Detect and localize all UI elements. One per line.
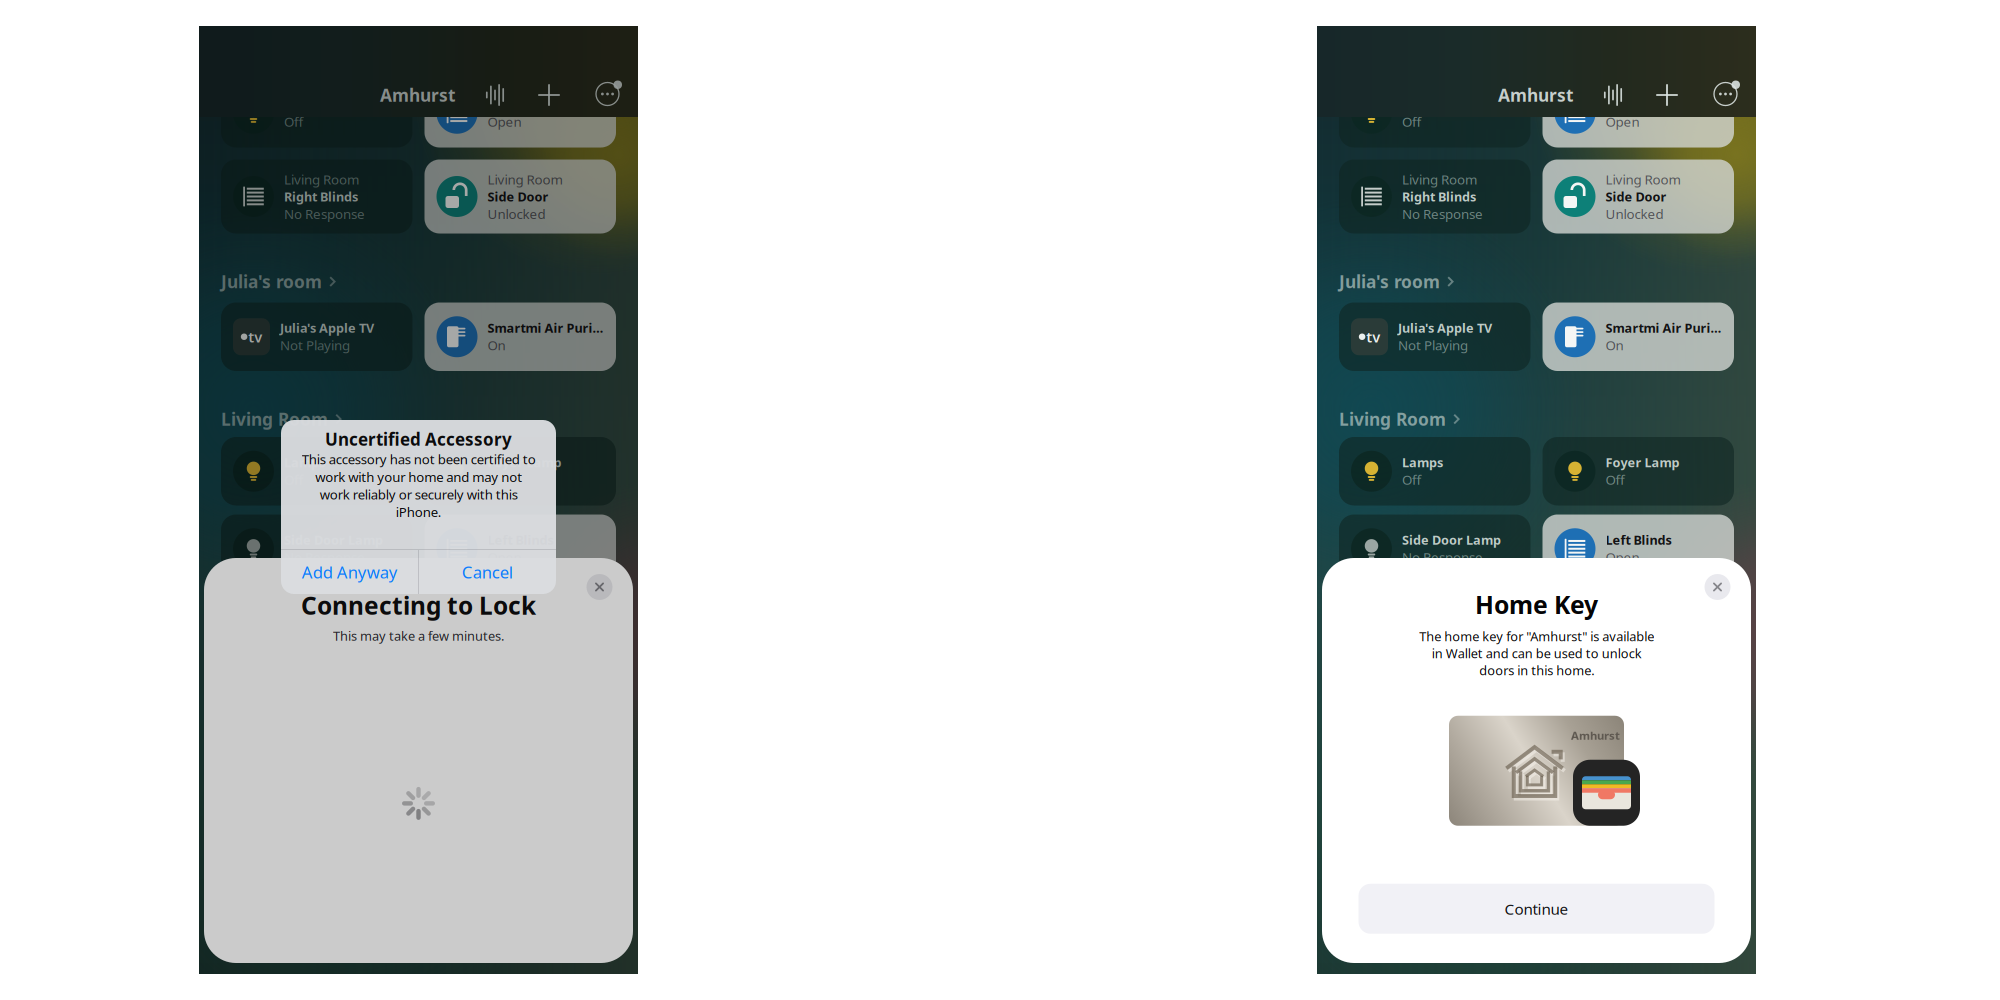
staticText: No Response	[1402, 205, 1483, 223]
staticText: Add Anyway	[302, 561, 398, 583]
staticText: Off	[284, 113, 303, 130]
button[interactable]: More options	[1710, 78, 1736, 112]
staticText: Smartmi Air Purifi...	[1605, 319, 1722, 336]
button[interactable]: Smartmi Air Purifi...	[424, 302, 616, 371]
button[interactable]: Continue	[1358, 884, 1714, 934]
button[interactable]: Side Door Lamp	[221, 514, 412, 583]
staticText: This accessory has not been certified to…	[301, 450, 535, 521]
staticText: The home key for "Amhurst" is available …	[1419, 628, 1654, 679]
staticText: tv	[1366, 327, 1380, 346]
button[interactable]: More options	[592, 78, 618, 112]
button[interactable]: tv	[1339, 302, 1530, 371]
button[interactable]: Living Room	[1339, 159, 1530, 233]
button[interactable]: Left Blinds	[424, 514, 616, 583]
button[interactable]: Lamps	[221, 437, 412, 505]
staticText: Side Door	[487, 188, 548, 205]
staticText: Foyer Lamp	[487, 454, 561, 471]
staticText: Open	[1605, 548, 1639, 566]
staticText: Open	[487, 548, 521, 566]
staticText: Right Blinds	[284, 188, 358, 205]
staticText: Living Room	[284, 170, 359, 188]
staticText: Unlocked	[487, 205, 545, 223]
staticText: tv	[248, 327, 262, 346]
staticText: Side Door	[1605, 188, 1666, 205]
staticText: Off	[1402, 113, 1421, 130]
staticText: On	[487, 336, 505, 354]
button[interactable]: Living Room	[1339, 409, 1733, 429]
staticText: Not Playing	[280, 336, 350, 354]
button[interactable]: Media	[480, 78, 510, 112]
button[interactable]: Lamp	[221, 79, 412, 147]
staticText: Amhurst	[1498, 83, 1574, 106]
button[interactable]: Right Blinds	[1542, 79, 1734, 147]
staticText: Julia's room	[1339, 270, 1440, 293]
staticText: Open	[1605, 113, 1639, 130]
staticText: Home Key	[1475, 588, 1598, 621]
staticText: Connecting to Lock	[301, 589, 536, 621]
staticText: Right Blinds	[1605, 96, 1679, 113]
staticText: Cancel	[462, 561, 513, 583]
staticText: Right Blinds	[1402, 188, 1476, 205]
button[interactable]: Foyer Lamp	[1542, 437, 1734, 505]
staticText: Amhurst	[1571, 728, 1620, 743]
staticText: Right Blinds	[487, 96, 561, 113]
staticText: Off	[1605, 471, 1624, 488]
staticText: Lamps	[1402, 454, 1443, 471]
button[interactable]: Julia's room	[1339, 271, 1733, 291]
button[interactable]: Living Room	[221, 409, 615, 429]
staticText: Living Room	[1339, 407, 1446, 430]
staticText: Amhurst	[380, 83, 456, 106]
button[interactable]: Add accessory	[536, 78, 562, 112]
button[interactable]: Living Room	[424, 159, 616, 233]
button[interactable]: Close	[582, 570, 616, 604]
button[interactable]: Foyer Lamp	[424, 437, 616, 505]
staticText: Foyer Lamp	[1605, 454, 1679, 471]
staticText: Julia's Apple TV	[1398, 319, 1492, 336]
button[interactable]: Julia's room	[221, 271, 615, 291]
button[interactable]: Lamp	[1339, 79, 1530, 147]
staticText: No Response	[1402, 548, 1483, 566]
button[interactable]: Left Blinds	[1542, 514, 1734, 583]
staticText: Living Room	[221, 407, 328, 430]
staticText: Uncertified Accessory	[325, 428, 512, 450]
staticText: This may take a few minutes.	[333, 627, 504, 644]
button[interactable]: tv	[221, 302, 412, 371]
button[interactable]: Right Blinds	[424, 79, 616, 147]
staticText: On	[1605, 336, 1623, 354]
button[interactable]: Add accessory	[1654, 78, 1680, 112]
button[interactable]: Close	[1700, 570, 1734, 604]
button[interactable]: Cancel	[419, 550, 556, 594]
staticText: No Response	[284, 205, 365, 223]
staticText: Unlocked	[1605, 205, 1663, 223]
staticText: Not Playing	[1398, 336, 1468, 354]
staticText: No Response	[284, 548, 365, 566]
button[interactable]: Living Room	[221, 159, 412, 233]
staticText: Smartmi Air Purifi...	[487, 319, 604, 336]
button[interactable]: Smartmi Air Purifi...	[1542, 302, 1734, 371]
staticText: Off	[1402, 471, 1421, 488]
button[interactable]: Add Anyway	[281, 550, 418, 594]
staticText: Lamps	[284, 454, 325, 471]
staticText: Julia's room	[221, 270, 322, 293]
button[interactable]: Side Door Lamp	[1339, 514, 1530, 583]
staticText: Living Room	[487, 170, 562, 188]
staticText: Julia's Apple TV	[280, 319, 374, 336]
staticText: Side Door Lamp	[1402, 531, 1501, 548]
button[interactable]: Living Room	[1542, 159, 1734, 233]
staticText: Left Blinds	[1605, 531, 1671, 548]
button[interactable]: Lamps	[1339, 437, 1530, 505]
button[interactable]: Media	[1598, 78, 1628, 112]
staticText: Continue	[1504, 899, 1568, 919]
staticText: Open	[487, 113, 521, 130]
staticText: Living Room	[1402, 170, 1477, 188]
staticText: Living Room	[1605, 170, 1680, 188]
staticText: Off	[487, 471, 506, 488]
